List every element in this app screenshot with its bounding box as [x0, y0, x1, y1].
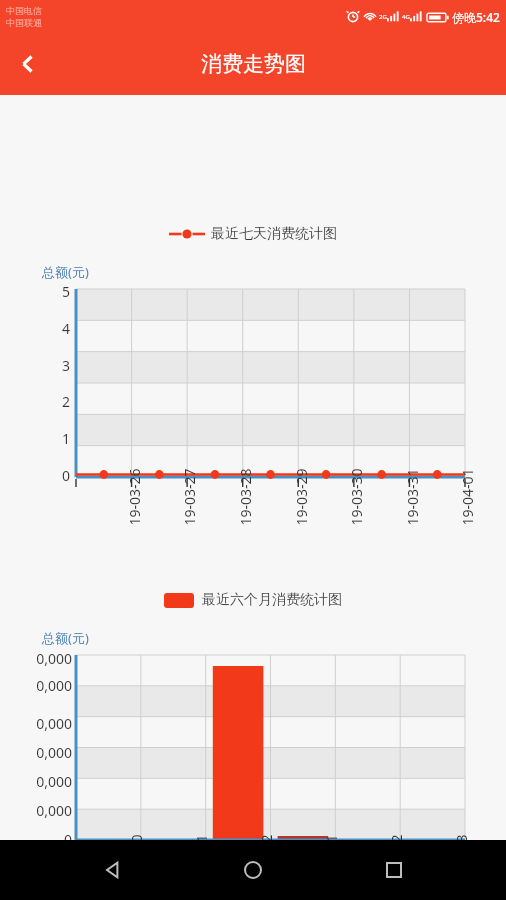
- staticText: 0,000: [0, 801, 72, 820]
- staticText: 0,000: [0, 676, 72, 695]
- staticText: 中国电信: [6, 5, 42, 16]
- button[interactable]: Recents: [366, 842, 422, 898]
- button[interactable]: Home: [225, 842, 281, 898]
- staticText: 0: [56, 466, 70, 485]
- staticText: 最近七天消费统计图: [211, 225, 337, 243]
- staticText: 2019-02: [387, 834, 406, 887]
- staticText: 19-03-27: [179, 467, 198, 525]
- staticText: 5: [56, 282, 70, 301]
- staticText: 2019-01: [322, 834, 341, 887]
- staticText: 0,000: [0, 772, 72, 791]
- staticText: 最近六个月消费统计图: [202, 591, 342, 609]
- staticText: 0,000: [0, 743, 72, 762]
- button[interactable]: Back: [0, 36, 56, 92]
- staticText: 3: [56, 356, 70, 375]
- staticText: 总额(元): [42, 263, 89, 281]
- staticText: 19-03-26: [124, 467, 143, 525]
- staticText: 19-04-01: [457, 467, 476, 525]
- staticText: 0: [0, 830, 72, 849]
- staticText: 19-03-30: [346, 467, 365, 525]
- staticText: 0,000: [0, 649, 72, 668]
- staticText: 4G: [402, 13, 410, 21]
- staticText: 中国联通: [6, 17, 42, 28]
- staticText: 消费走势图: [201, 51, 306, 77]
- button[interactable]: Back: [85, 842, 141, 898]
- staticText: 0,000: [0, 714, 72, 733]
- staticText: 2019-03: [452, 834, 471, 887]
- staticText: 2018-11: [192, 834, 211, 887]
- staticText: 1: [56, 429, 70, 448]
- staticText: 2018-12: [257, 834, 276, 887]
- staticText: 2: [56, 392, 70, 411]
- staticText: 傍晚5:42: [452, 9, 500, 25]
- staticText: 19-03-28: [235, 467, 254, 525]
- staticText: 4: [56, 319, 70, 338]
- staticText: 总额(元): [42, 629, 89, 647]
- staticText: 19-03-31: [402, 467, 421, 525]
- staticText: 2018-10: [127, 834, 146, 887]
- staticText: 19-03-29: [291, 467, 310, 525]
- staticText: 2G: [379, 13, 387, 21]
